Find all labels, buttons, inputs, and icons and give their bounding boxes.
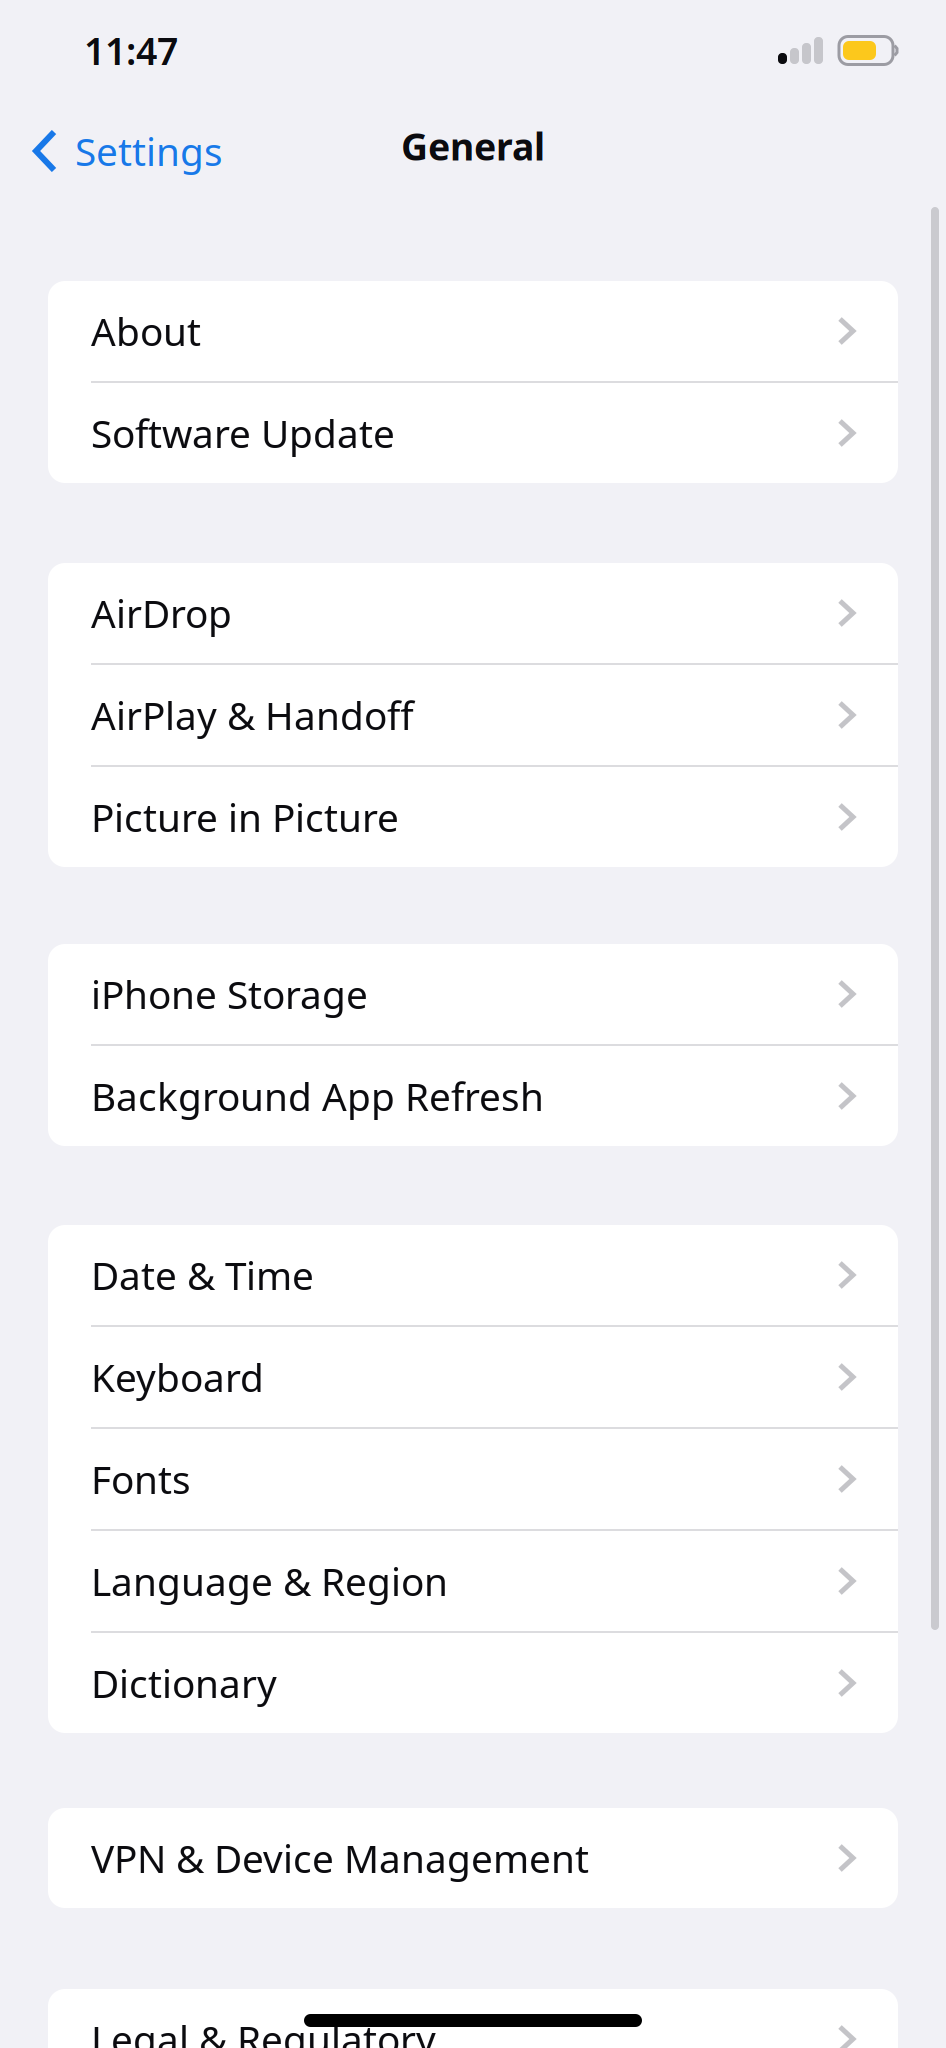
staticText: Fonts [91,1453,191,1505]
staticText: Software Update [91,407,395,459]
button[interactable]: Legal & Regulatory [48,1989,898,2048]
staticText: Date & Time [91,1249,314,1301]
staticText: Background App Refresh [91,1070,544,1122]
staticText: Settings [75,125,223,177]
button[interactable]: VPN & Device Management [48,1808,898,1908]
staticText: General [401,121,545,171]
staticText: Keyboard [91,1351,264,1403]
button[interactable]: Dictionary [48,1633,898,1733]
button[interactable]: iPhone Storage [48,944,898,1044]
staticText: 11:47 [84,26,178,75]
staticText: AirDrop [91,587,232,639]
button[interactable]: AirPlay & Handoff [48,665,898,765]
button[interactable]: Picture in Picture [48,767,898,867]
staticText: About [91,305,201,357]
staticText: Legal & Regulatory [91,2013,436,2048]
button[interactable]: Language & Region [48,1531,898,1631]
button[interactable]: Background App Refresh [48,1046,898,1146]
staticText: Dictionary [91,1657,277,1709]
button[interactable]: Fonts [48,1429,898,1529]
staticText: Language & Region [91,1555,448,1607]
staticText: Picture in Picture [91,791,399,843]
staticText: VPN & Device Management [91,1832,589,1884]
staticText: iPhone Storage [91,968,368,1020]
button[interactable]: About [48,281,898,381]
button[interactable]: Back to Settings [0,115,223,177]
button[interactable]: AirDrop [48,563,898,663]
button[interactable]: Software Update [48,383,898,483]
staticText: AirPlay & Handoff [91,689,414,741]
button[interactable]: Keyboard [48,1327,898,1427]
button[interactable]: Date & Time [48,1225,898,1325]
